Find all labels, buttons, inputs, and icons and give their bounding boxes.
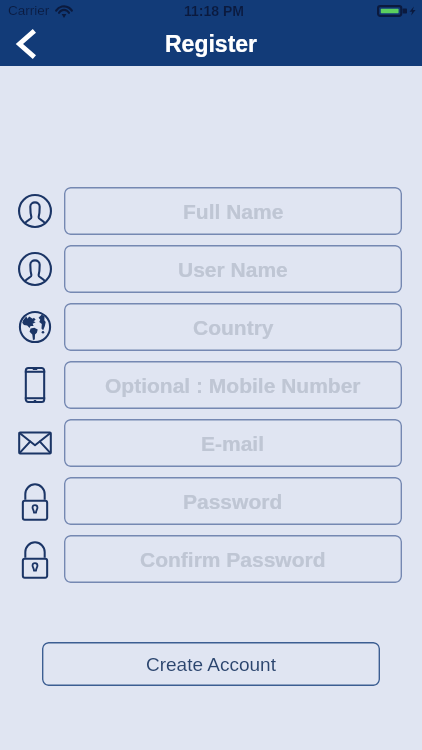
staticText: E-mail: [201, 432, 265, 455]
button[interactable]: Full Name: [64, 187, 402, 235]
staticText: Carrier: [8, 3, 50, 18]
staticText: Full Name: [183, 200, 284, 223]
button[interactable]: Optional : Mobile Number: [64, 361, 402, 409]
staticText: Password: [183, 490, 283, 513]
staticText: Optional : Mobile Number: [105, 374, 361, 397]
button[interactable]: Create Account: [42, 642, 380, 686]
staticText: Create Account: [146, 654, 276, 675]
button[interactable]: Password: [64, 477, 402, 525]
staticText: Country: [193, 316, 274, 339]
button[interactable]: User Name: [64, 245, 402, 293]
staticText: Confirm Password: [140, 548, 326, 571]
button[interactable]: Back: [5, 23, 47, 65]
staticText: User Name: [178, 258, 288, 281]
staticText: Register: [165, 31, 258, 57]
button[interactable]: Country: [64, 303, 402, 351]
button[interactable]: E-mail: [64, 419, 402, 467]
button[interactable]: Confirm Password: [64, 535, 402, 583]
staticText: 11:18 PM: [184, 3, 244, 19]
